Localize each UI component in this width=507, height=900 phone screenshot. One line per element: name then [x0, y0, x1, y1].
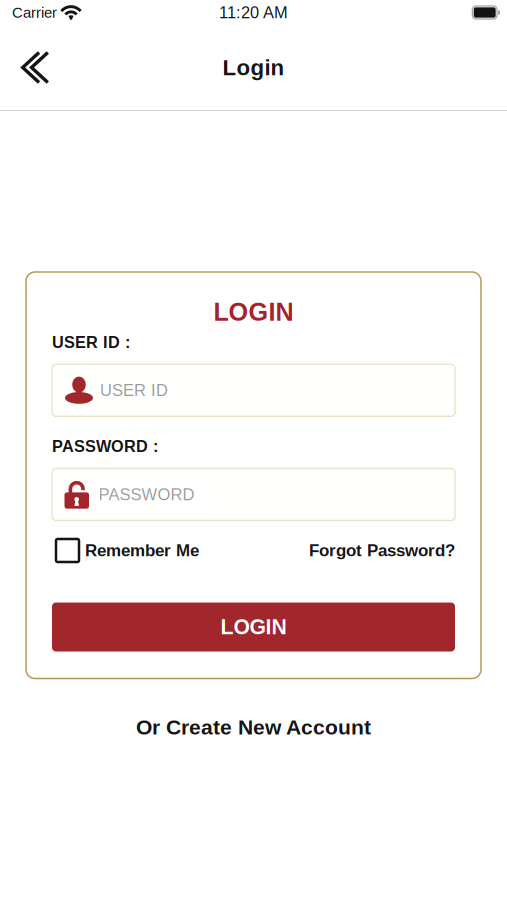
staticText: Remember Me — [85, 541, 199, 560]
button[interactable]: USER ID — [52, 364, 455, 416]
button[interactable]: Remember Me — [52, 537, 199, 564]
staticText: USER ID : — [52, 333, 130, 351]
staticText: Or Create New Account — [136, 715, 371, 739]
button[interactable]: LOGIN — [52, 602, 455, 651]
button[interactable]: PASSWORD — [52, 468, 455, 520]
staticText: LOGIN — [220, 615, 286, 639]
button[interactable]: Or Create New Account — [132, 711, 375, 743]
button[interactable]: Forgot Password? — [309, 539, 455, 562]
staticText: 11:20 AM — [219, 3, 288, 22]
staticText: Carrier — [12, 4, 57, 21]
staticText: USER ID — [100, 381, 168, 400]
staticText: Forgot Password? — [309, 541, 455, 560]
button[interactable]: Back — [0, 31, 63, 103]
staticText: Login — [222, 55, 284, 80]
staticText: PASSWORD — [98, 485, 194, 504]
staticText: PASSWORD : — [52, 437, 158, 455]
staticText: LOGIN — [213, 298, 293, 326]
